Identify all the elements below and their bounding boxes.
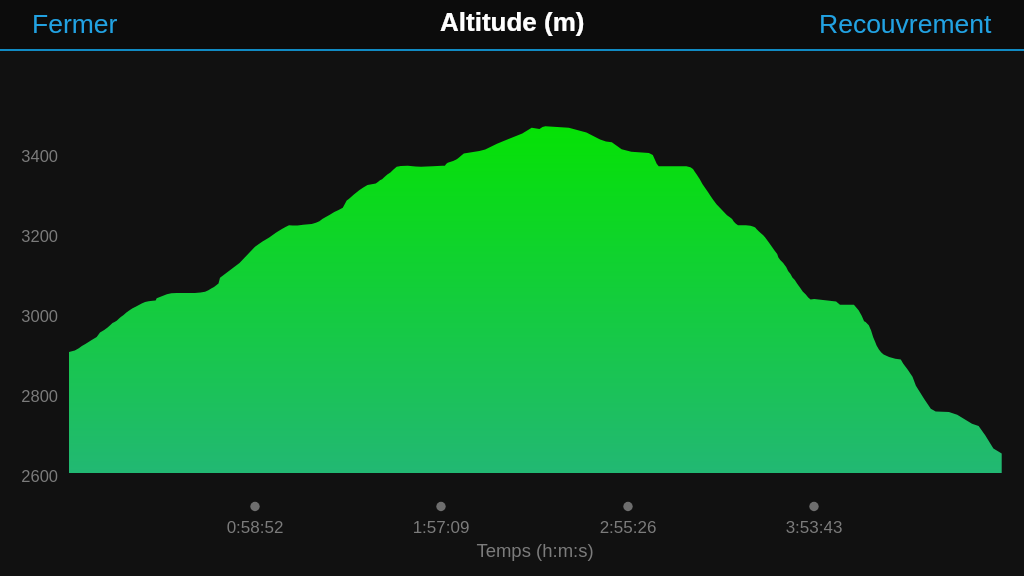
- staticText: 2:55:26: [558, 518, 698, 537]
- staticText: 3:53:43: [744, 518, 884, 537]
- staticText: 3400: [0, 147, 58, 165]
- staticText: 1:57:09: [371, 518, 511, 537]
- staticText: 3000: [0, 307, 58, 325]
- staticText: 2600: [0, 467, 58, 485]
- staticText: 0:58:52: [185, 518, 325, 537]
- staticText: Altitude (m): [440, 7, 585, 36]
- button[interactable]: Recouvrement: [787, 0, 1024, 48]
- staticText: Temps (h:m:s): [23, 540, 1024, 561]
- other: Altitude profile chart: [0, 0, 1024, 576]
- button[interactable]: Fermer: [0, 0, 150, 48]
- staticText: Fermer: [32, 9, 118, 39]
- staticText: 3200: [0, 227, 58, 245]
- staticText: Recouvrement: [819, 9, 992, 39]
- staticText: 2800: [0, 387, 58, 405]
